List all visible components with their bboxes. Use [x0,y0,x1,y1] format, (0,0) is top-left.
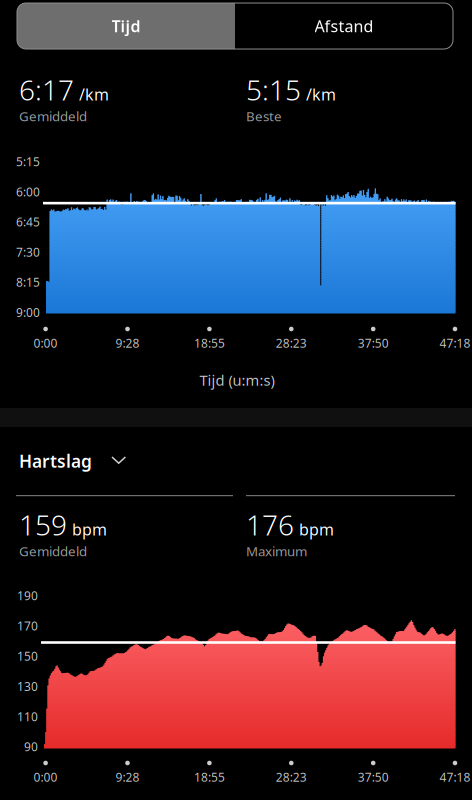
staticText: 37:50 [358,769,389,785]
staticText: 110 [17,708,38,724]
staticText: Maximum [246,542,307,560]
staticText: 9:28 [115,335,139,351]
staticText: 18:55 [194,335,225,351]
staticText: 150 [17,648,38,664]
staticText: 176 [246,506,294,543]
staticText: 28:23 [276,335,307,351]
staticText: 190 [17,588,38,604]
staticText: 9:00 [16,304,40,320]
button[interactable]: Tijd [17,3,235,49]
staticText: /km [306,84,336,105]
staticText: bpm [299,519,334,540]
staticText: 37:50 [358,335,389,351]
staticText: 7:30 [16,244,40,260]
staticText: 47:18 [439,769,470,785]
staticText: 159 [19,506,67,543]
staticText: bpm [72,519,107,540]
staticText: Beste [246,107,282,125]
staticText: 28:23 [276,769,307,785]
staticText: 0:00 [34,335,58,351]
button[interactable]: Afstand [235,3,453,49]
staticText: 0:00 [34,769,58,785]
staticText: 90 [24,739,38,755]
staticText: 47:18 [439,335,470,351]
staticText: 9:28 [115,769,139,785]
staticText: 170 [17,618,38,634]
staticText: 5:15 [246,71,301,108]
staticText: Tijd (u:m:s) [199,370,274,390]
staticText: 8:15 [16,274,40,290]
staticText: 6:17 [19,71,74,108]
staticText: Tijd [111,15,140,37]
staticText: /km [79,84,109,105]
staticText: 5:15 [16,154,40,169]
staticText: Gemiddeld [19,542,87,560]
staticText: Gemiddeld [19,107,87,125]
staticText: 6:00 [16,184,40,200]
staticText: 6:45 [16,214,40,230]
staticText: 130 [17,678,38,694]
staticText: 18:55 [194,769,225,785]
button[interactable]: Hartslag [19,447,249,475]
staticText: Afstand [314,15,373,37]
staticText: Hartslag [19,449,92,472]
